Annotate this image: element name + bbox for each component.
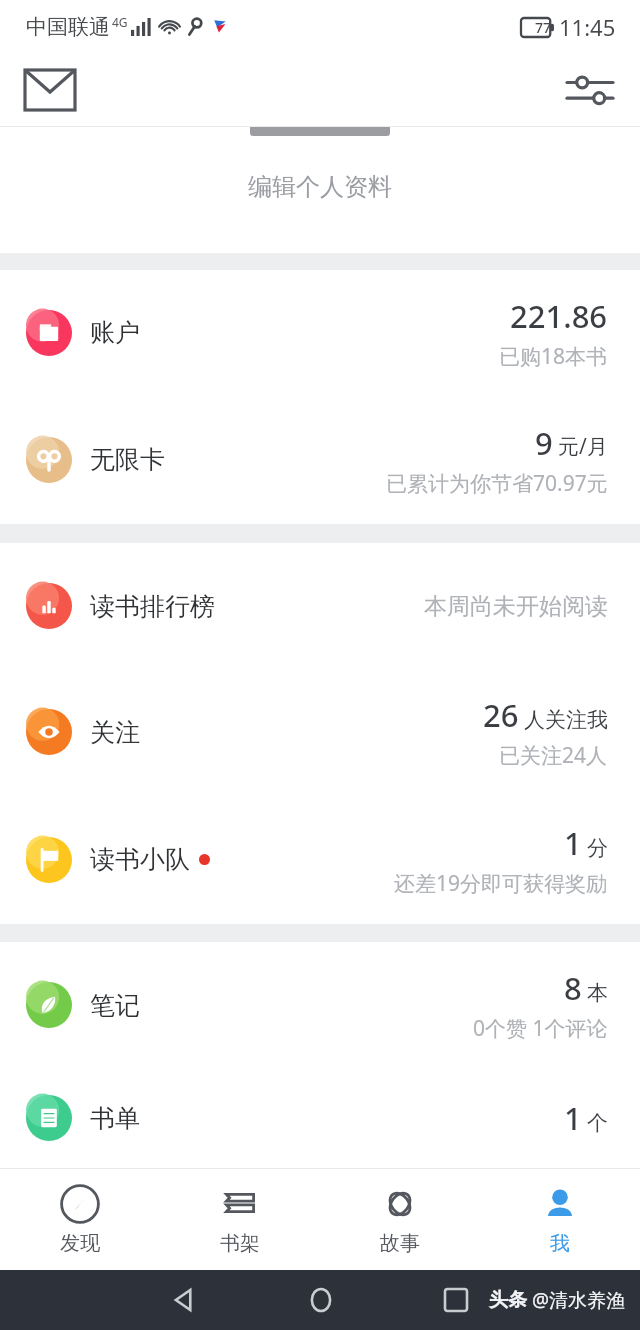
- staticText: 9: [535, 422, 553, 464]
- button[interactable]: 笔记: [0, 942, 640, 1068]
- staticText: 读书排行榜: [90, 591, 215, 622]
- staticText: 8: [564, 967, 582, 1009]
- staticText: @清水养渔: [532, 1287, 626, 1313]
- staticText: 我: [550, 1231, 570, 1256]
- staticText: 1: [564, 1097, 582, 1139]
- staticText: 书架: [220, 1231, 260, 1256]
- staticText: 无限卡: [90, 444, 165, 475]
- button[interactable]: 无限卡: [0, 395, 640, 524]
- button[interactable]: 我: [480, 1169, 640, 1270]
- staticText: 已购18本书: [499, 342, 608, 371]
- staticText: 中国联通: [26, 14, 110, 40]
- staticText: 已累计为你节省70.97元: [386, 469, 608, 498]
- button[interactable]: Home: [299, 1278, 343, 1322]
- staticText: 分: [587, 835, 608, 861]
- staticText: 本周尚未开始阅读: [424, 592, 608, 621]
- staticText: 账户: [90, 317, 140, 348]
- button[interactable]: Settings: [558, 58, 622, 122]
- button[interactable]: 关注: [0, 669, 640, 795]
- staticText: 发现: [60, 1231, 100, 1256]
- staticText: 11:45: [559, 12, 616, 42]
- button[interactable]: 故事: [320, 1169, 480, 1270]
- button[interactable]: 读书小队: [0, 795, 640, 924]
- staticText: 221.86: [510, 295, 608, 337]
- staticText: 书单: [90, 1103, 140, 1134]
- staticText: 26: [483, 694, 519, 736]
- staticText: 人关注我: [524, 707, 608, 733]
- button[interactable]: Recents: [434, 1278, 478, 1322]
- staticText: 1: [564, 822, 582, 864]
- staticText: 4G: [112, 14, 128, 30]
- button[interactable]: 读书排行榜: [0, 543, 640, 669]
- staticText: 0个赞 1个评论: [473, 1014, 608, 1043]
- staticText: 笔记: [90, 990, 140, 1021]
- staticText: 77: [535, 18, 552, 37]
- button[interactable]: 发现: [0, 1169, 160, 1270]
- staticText: 还差19分即可获得奖励: [394, 869, 608, 898]
- staticText: 编辑个人资料: [248, 172, 392, 202]
- staticText: 头条: [489, 1288, 527, 1312]
- button[interactable]: 账户: [0, 270, 640, 395]
- button[interactable]: 书架: [160, 1169, 320, 1270]
- staticText: 已关注24人: [499, 741, 608, 770]
- staticText: 本: [587, 980, 608, 1006]
- button[interactable]: Back: [163, 1278, 207, 1322]
- button[interactable]: 编辑个人资料: [0, 126, 640, 253]
- button[interactable]: 书单: [0, 1068, 640, 1168]
- staticText: 关注: [90, 717, 140, 748]
- button[interactable]: Messages: [18, 58, 82, 122]
- staticText: 故事: [380, 1231, 420, 1256]
- staticText: 读书小队: [90, 844, 190, 875]
- staticText: 个: [587, 1110, 608, 1136]
- staticText: 元/月: [558, 432, 608, 461]
